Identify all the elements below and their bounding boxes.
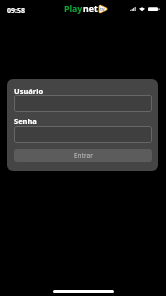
staticText: Play [64,3,83,15]
staticText: Usuário [14,86,44,96]
staticText: net [83,3,98,15]
other: Signal, Wi-Fi and battery status [0,0,166,18]
staticText: Senha [14,116,37,126]
button[interactable]: Entrar [14,149,152,162]
staticText: tv [100,6,105,12]
staticText: 09:58 [7,6,25,16]
staticText: Entrar [74,151,93,160]
button[interactable]: Usuário [14,95,152,112]
button[interactable]: Senha [14,126,152,143]
